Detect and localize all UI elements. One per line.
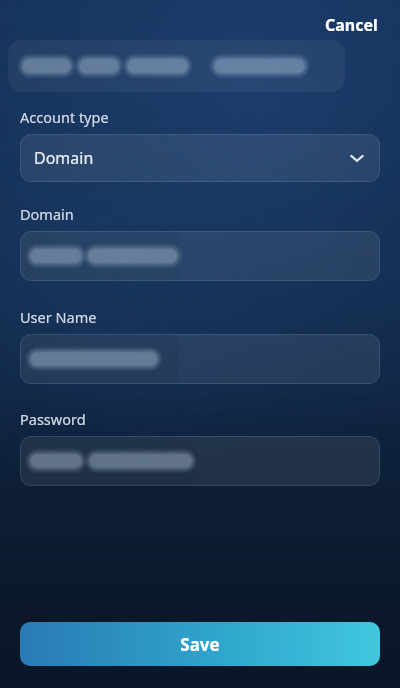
staticText: User Name [20, 307, 97, 327]
staticText: Domain [34, 147, 94, 169]
button[interactable] [20, 436, 380, 486]
staticText: Password [20, 409, 86, 429]
button[interactable]: Domain [20, 134, 380, 182]
button[interactable]: Save [20, 622, 380, 666]
button[interactable]: Cancel [313, 6, 390, 44]
staticText: Cancel [325, 14, 378, 36]
staticText: Domain [20, 204, 74, 224]
button[interactable] [20, 334, 380, 384]
other: Expand account type [348, 149, 366, 167]
staticText: Account type [20, 107, 109, 127]
staticText: Save [180, 633, 220, 656]
button[interactable] [20, 231, 380, 281]
